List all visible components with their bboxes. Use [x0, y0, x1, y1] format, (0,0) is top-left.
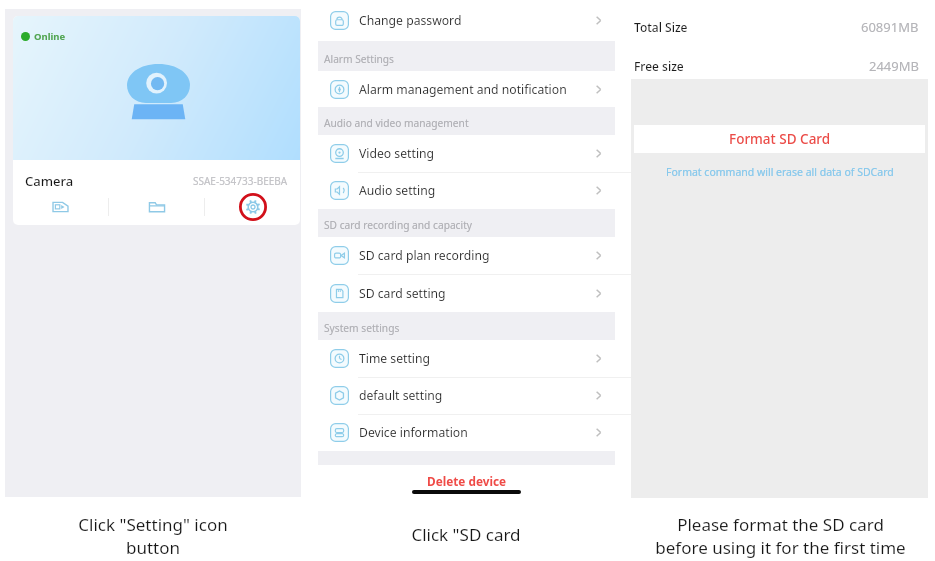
button[interactable]: default setting — [318, 377, 615, 414]
staticText: Please format the SD card before using i… — [655, 513, 906, 559]
staticText: Audio and video management — [324, 116, 469, 130]
staticText: Alarm Settings — [324, 52, 394, 66]
button[interactable]: Time setting — [318, 340, 615, 377]
button[interactable]: Device information — [318, 414, 615, 451]
staticText: Click "Setting" icon button — [78, 513, 228, 559]
staticText: Free size — [634, 58, 684, 74]
staticText: Device information — [359, 424, 468, 441]
staticText: default setting — [359, 387, 443, 404]
staticText: Camera — [25, 172, 74, 190]
staticText: System settings — [324, 321, 400, 335]
button[interactable]: Video setting — [318, 135, 615, 172]
button[interactable]: Change password — [318, 0, 615, 41]
staticText: Time setting — [359, 350, 431, 367]
staticText: 2449MB — [869, 57, 919, 75]
staticText: Change password — [359, 12, 462, 29]
staticText: Total Size — [634, 19, 688, 35]
button[interactable]: SD card plan recording — [318, 237, 615, 274]
staticText: SD card recording and capacity — [324, 218, 473, 232]
staticText: Click "SD card — [411, 523, 521, 546]
staticText: Online — [34, 30, 66, 43]
button[interactable]: Alarm management and notification — [318, 71, 615, 107]
staticText: Audio setting — [359, 182, 436, 199]
staticText: Format command will erase all data of SD… — [666, 165, 894, 179]
button[interactable]: Setting — [205, 188, 300, 225]
staticText: Alarm management and notification — [359, 81, 567, 98]
staticText: SD card plan recording — [359, 247, 490, 264]
staticText: Video setting — [359, 145, 435, 162]
button[interactable]: SD card setting — [318, 274, 615, 312]
button[interactable]: Format SD Card — [634, 125, 925, 153]
button[interactable]: Playback — [13, 188, 108, 225]
button[interactable]: Files — [109, 188, 204, 225]
button[interactable]: Delete device — [419, 472, 515, 490]
staticText: SSAE-534733-BEEBA — [193, 174, 288, 188]
button[interactable]: Audio setting — [318, 172, 615, 209]
staticText: Delete device — [427, 473, 507, 489]
staticText: 60891MB — [861, 18, 919, 36]
staticText: Format SD Card — [729, 130, 831, 148]
staticText: SD card setting — [359, 285, 446, 302]
